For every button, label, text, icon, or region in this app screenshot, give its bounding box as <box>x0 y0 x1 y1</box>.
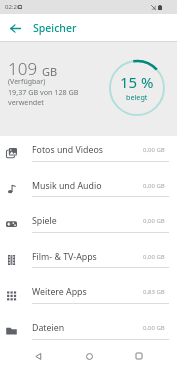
staticText: Fotos und Videos <box>32 144 103 156</box>
staticText: Dateien <box>32 322 65 334</box>
staticText: 0,83 GB <box>143 288 165 296</box>
staticText: Film- & TV-Apps <box>32 251 97 263</box>
button[interactable]: Dateien <box>0 316 177 340</box>
button[interactable]: Spiele <box>0 209 177 233</box>
staticText: Spiele <box>32 215 57 227</box>
button[interactable]: Übersicht <box>127 344 151 368</box>
staticText: 0,00 GB <box>143 253 165 261</box>
staticText: Musik und Audio <box>32 180 102 192</box>
button[interactable]: Weitere Apps <box>0 280 177 304</box>
staticText: belegt <box>126 92 148 102</box>
staticText: 0,00 GB <box>143 182 165 190</box>
staticText: Speicher <box>33 21 77 35</box>
staticText: 02:26 <box>5 3 21 11</box>
button[interactable]: Fotos und Videos <box>0 138 177 162</box>
staticText: 15 % <box>120 72 154 92</box>
button[interactable]: Startbildschirm <box>77 344 101 368</box>
staticText: 0,00 GB <box>143 146 165 154</box>
button[interactable]: Zurück <box>26 344 50 368</box>
staticText: 19,37 GB von 128 GB verwendet <box>8 87 79 107</box>
staticText: Weitere Apps <box>32 286 87 298</box>
staticText: GB <box>42 64 58 79</box>
button[interactable]: Musik und Audio <box>0 174 177 198</box>
staticText: (Verfügbar) <box>8 77 46 87</box>
button[interactable]: Zurück <box>4 17 26 39</box>
staticText: 0,00 GB <box>143 324 165 332</box>
button[interactable]: Film- & TV-Apps <box>0 245 177 269</box>
staticText: 0,00 GB <box>143 217 165 225</box>
staticText: 109 <box>8 57 38 80</box>
